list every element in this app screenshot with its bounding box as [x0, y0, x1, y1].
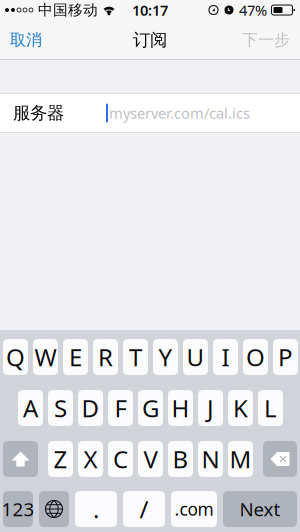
button[interactable]: P [273, 339, 298, 375]
staticText: 10:17 [132, 0, 168, 20]
staticText: E [69, 341, 82, 373]
button[interactable]: A [18, 390, 43, 426]
staticText: 123 [1, 497, 34, 521]
staticText: . [93, 493, 99, 525]
button[interactable]: O [243, 339, 268, 375]
button[interactable]: V [138, 441, 163, 477]
button[interactable]: Z [48, 441, 73, 477]
staticText: J [207, 392, 214, 424]
button[interactable]: / [123, 491, 165, 527]
button[interactable]: Next [223, 491, 297, 527]
button[interactable]: H [168, 390, 193, 426]
staticText: Next [239, 497, 280, 521]
button[interactable]: I [213, 339, 238, 375]
staticText: I [221, 341, 229, 373]
button[interactable]: . [75, 491, 117, 527]
button[interactable]: U [183, 339, 208, 375]
button[interactable]: D [78, 390, 103, 426]
button[interactable]: R [93, 339, 118, 375]
button[interactable]: E [63, 339, 88, 375]
button[interactable]: L [258, 390, 283, 426]
button[interactable]: Delete [263, 441, 297, 477]
staticText: / [139, 493, 148, 525]
staticText: H [171, 392, 189, 424]
button[interactable]: S [48, 390, 73, 426]
staticText: S [54, 392, 67, 424]
button[interactable]: K [228, 390, 253, 426]
staticText: 订阅 [133, 29, 167, 51]
staticText: R [98, 341, 113, 373]
staticText: 取消 [10, 30, 42, 50]
button[interactable]: M [228, 441, 253, 477]
staticText: P [278, 341, 293, 373]
staticText: K [233, 392, 248, 424]
staticText: C [113, 443, 128, 475]
button[interactable]: J [198, 390, 223, 426]
button[interactable]: W [33, 339, 58, 375]
staticText: T [129, 341, 142, 373]
button[interactable]: X [78, 441, 103, 477]
staticText: M [229, 443, 251, 475]
button[interactable]: Q [3, 339, 28, 375]
staticText: X [83, 443, 97, 475]
staticText: A [23, 392, 38, 424]
staticText: Y [158, 341, 172, 373]
staticText: 47% [239, 0, 267, 20]
staticText: 下一步 [242, 30, 290, 50]
button[interactable]: N [198, 441, 223, 477]
button[interactable]: B [168, 441, 193, 477]
button[interactable]: Shift [3, 441, 38, 477]
staticText: G [142, 392, 159, 424]
button[interactable]: Y [153, 339, 178, 375]
button[interactable]: T [123, 339, 148, 375]
staticText: Z [53, 443, 67, 475]
staticText: 中国移动 [38, 1, 98, 19]
staticText: U [186, 341, 204, 373]
button[interactable]: 下一步 [234, 20, 298, 60]
button[interactable]: F [108, 390, 133, 426]
staticText: F [114, 392, 126, 424]
staticText: W [34, 341, 56, 373]
button[interactable]: .com [171, 491, 217, 527]
staticText: V [143, 443, 157, 475]
staticText: myserver.com/cal.ics [109, 103, 250, 123]
staticText: O [246, 341, 265, 373]
staticText: .com [174, 497, 213, 520]
button[interactable]: C [108, 441, 133, 477]
staticText: B [172, 443, 188, 475]
staticText: D [81, 392, 99, 424]
staticText: L [264, 392, 277, 424]
button[interactable]: Next keyboard [39, 491, 69, 527]
staticText: N [201, 443, 219, 475]
staticText: Q [6, 341, 25, 373]
button[interactable]: 123 [3, 491, 33, 527]
button[interactable]: G [138, 390, 163, 426]
button[interactable]: 取消 [2, 20, 50, 60]
staticText: 服务器 [13, 102, 64, 124]
